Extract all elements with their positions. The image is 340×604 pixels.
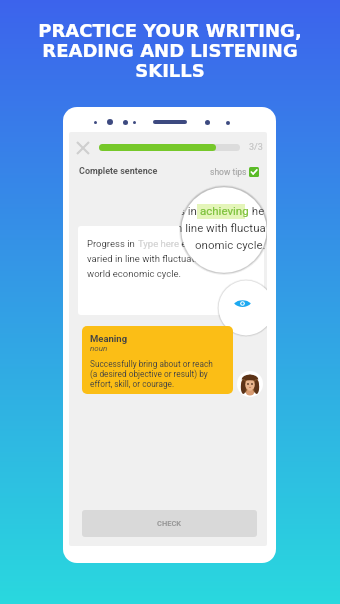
staticText: onomic cycle. xyxy=(195,238,266,251)
staticText: world economic cycle. xyxy=(87,268,182,279)
staticText: 3/3 xyxy=(249,142,263,153)
staticText: Progress in xyxy=(87,238,138,249)
button[interactable]: CHECK xyxy=(82,510,257,537)
staticText: Complete sentence xyxy=(79,166,158,177)
staticText: achieving xyxy=(200,204,249,217)
button[interactable]: Close xyxy=(74,139,92,157)
button[interactable]: Show tips xyxy=(249,167,259,177)
staticText: Type here xyxy=(138,238,179,249)
staticText: he xyxy=(249,204,265,217)
staticText: Successfully bring about or reach (a des… xyxy=(90,359,213,389)
staticText: Meaning xyxy=(90,333,128,344)
staticText: s in xyxy=(179,204,200,217)
staticText: n line with fluctuatio xyxy=(179,221,266,234)
staticText: varied in line with fluctuations in the xyxy=(87,253,239,264)
staticText: noun xyxy=(90,344,108,353)
staticText: show tips xyxy=(210,167,247,177)
staticText: economic cycle. xyxy=(179,238,250,249)
button[interactable]: Show answer xyxy=(217,279,267,337)
staticText: PRACTICE YOUR WRITING, READING AND LISTE… xyxy=(0,20,340,81)
staticText: CHECK xyxy=(157,519,182,528)
button[interactable]: Meaning xyxy=(82,326,233,394)
